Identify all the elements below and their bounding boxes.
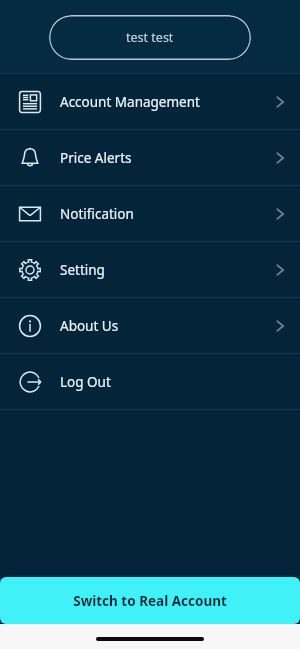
button[interactable]: Log Out: [0, 354, 300, 409]
button[interactable]: test test: [49, 15, 251, 60]
staticText: Price Alerts: [60, 149, 132, 167]
staticText: Setting: [60, 261, 105, 279]
button[interactable]: Account Management: [0, 74, 300, 129]
staticText: Account Management: [60, 93, 200, 111]
button[interactable]: Notification: [0, 186, 300, 241]
button[interactable]: Price Alerts: [0, 130, 300, 185]
staticText: About Us: [60, 317, 119, 335]
button[interactable]: Switch to Real Account: [0, 577, 300, 624]
staticText: Log Out: [60, 373, 111, 391]
staticText: Notification: [60, 205, 134, 223]
button[interactable]: About Us: [0, 298, 300, 353]
button[interactable]: Setting: [0, 242, 300, 297]
staticText: test test: [126, 29, 174, 46]
staticText: Switch to Real Account: [73, 592, 227, 610]
